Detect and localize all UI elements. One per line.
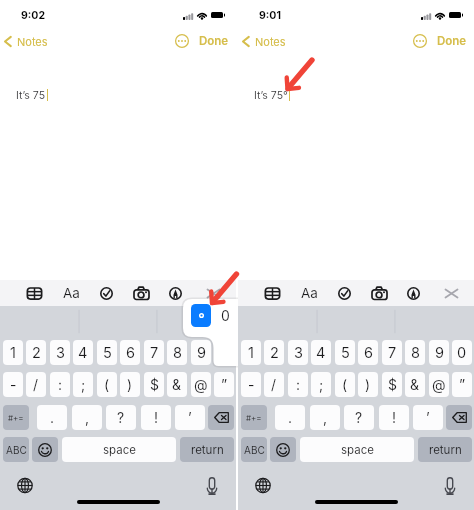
button[interactable]: & [405,372,425,397]
button[interactable]: Checklist [95,280,117,306]
staticText: 9 [435,344,444,362]
staticText: : [58,376,63,393]
button[interactable]: Emoji [32,437,58,462]
button[interactable]: : [50,372,70,397]
button[interactable]: - [241,372,261,397]
button[interactable]: 1 [241,340,261,365]
button[interactable]: Done [437,33,467,49]
button[interactable]: Aa [60,280,82,306]
button[interactable]: . [275,405,305,430]
button[interactable]: Done [199,33,229,49]
button[interactable]: 9 [429,340,449,365]
button[interactable]: 4 [311,340,331,365]
button[interactable]: Markup [402,280,424,306]
button[interactable]: #+= [3,405,29,430]
button[interactable]: 9 [191,340,211,365]
button[interactable]: 2 [264,340,284,365]
button[interactable]: ’ [413,405,443,430]
button[interactable]: 7 [144,340,164,365]
button[interactable]: 3 [50,340,70,365]
button[interactable]: 1 [3,340,23,365]
staticText: ’ [188,409,192,426]
button[interactable]: Next keyboard [255,477,271,494]
staticText: space [103,443,136,457]
button[interactable]: Delete [446,405,472,430]
button[interactable]: Delete [208,405,234,430]
button[interactable]: 4 [73,340,93,365]
button[interactable]: , [310,405,340,430]
button[interactable]: Markup [164,280,186,306]
button[interactable]: - [3,372,23,397]
staticText: 3 [56,344,65,362]
button[interactable]: ; [73,372,93,397]
button[interactable]: 6 [358,340,378,365]
button[interactable]: ! [379,405,409,430]
staticText: ! [392,409,397,426]
button[interactable]: Close keyboard [202,280,224,306]
button[interactable]: Camera [130,280,152,306]
button[interactable]: return [180,437,234,462]
staticText: ( [104,376,110,393]
button[interactable]: 2 [26,340,46,365]
button[interactable]: Insert table [23,280,45,306]
button[interactable]: space [62,437,176,462]
button[interactable]: ? [344,405,374,430]
button[interactable]: ( [97,372,117,397]
button[interactable]: 5 [97,340,117,365]
button[interactable]: 8 [405,340,425,365]
button[interactable]: return [418,437,472,462]
button[interactable]: 5 [335,340,355,365]
button[interactable]: Degree symbol [191,304,211,327]
button[interactable]: $ [382,372,402,397]
button[interactable]: Insert table [261,280,283,306]
button[interactable]: 8 [167,340,187,365]
button[interactable]: @ [191,372,211,397]
button[interactable]: ” [214,372,234,397]
button[interactable]: . [37,405,67,430]
button[interactable]: More options [413,34,427,48]
button[interactable]: ABC [3,437,29,462]
button[interactable]: space [300,437,414,462]
button[interactable]: / [26,372,46,397]
button[interactable]: Dictate [206,477,218,495]
button[interactable]: #+= [241,405,267,430]
button[interactable]: ) [120,372,140,397]
button[interactable]: ABC [241,437,267,462]
button[interactable]: Close keyboard [440,280,462,306]
button[interactable]: ; [311,372,331,397]
button[interactable]: 3 [288,340,308,365]
button[interactable]: More options [175,34,189,48]
button[interactable]: Checklist [333,280,355,306]
button[interactable]: $ [144,372,164,397]
button[interactable]: 6 [120,340,140,365]
button[interactable]: Next keyboard [17,477,33,494]
button[interactable]: 7 [382,340,402,365]
staticText: , [85,409,90,426]
button[interactable]: / [264,372,284,397]
staticText: Done [437,34,467,48]
staticText: 8 [411,344,420,362]
button[interactable]: Notes [242,32,286,50]
staticText: ABC [244,444,265,456]
button[interactable]: @ [429,372,449,397]
button[interactable]: & [167,372,187,397]
staticText: ’ [426,409,430,426]
staticText: 5 [103,344,112,362]
button[interactable]: Emoji [270,437,296,462]
button[interactable]: : [288,372,308,397]
button[interactable]: ( [335,372,355,397]
button[interactable]: ” [452,372,472,397]
button[interactable]: ? [106,405,136,430]
button[interactable]: ) [358,372,378,397]
button[interactable]: , [72,405,102,430]
staticText: ; [81,376,86,393]
button[interactable]: Notes [4,32,48,50]
button[interactable]: Camera [368,280,390,306]
button[interactable]: ’ [175,405,205,430]
button[interactable]: 0 [452,340,472,365]
button[interactable]: ! [141,405,171,430]
button[interactable]: Aa [298,280,320,306]
button[interactable]: Dictate [444,477,456,495]
